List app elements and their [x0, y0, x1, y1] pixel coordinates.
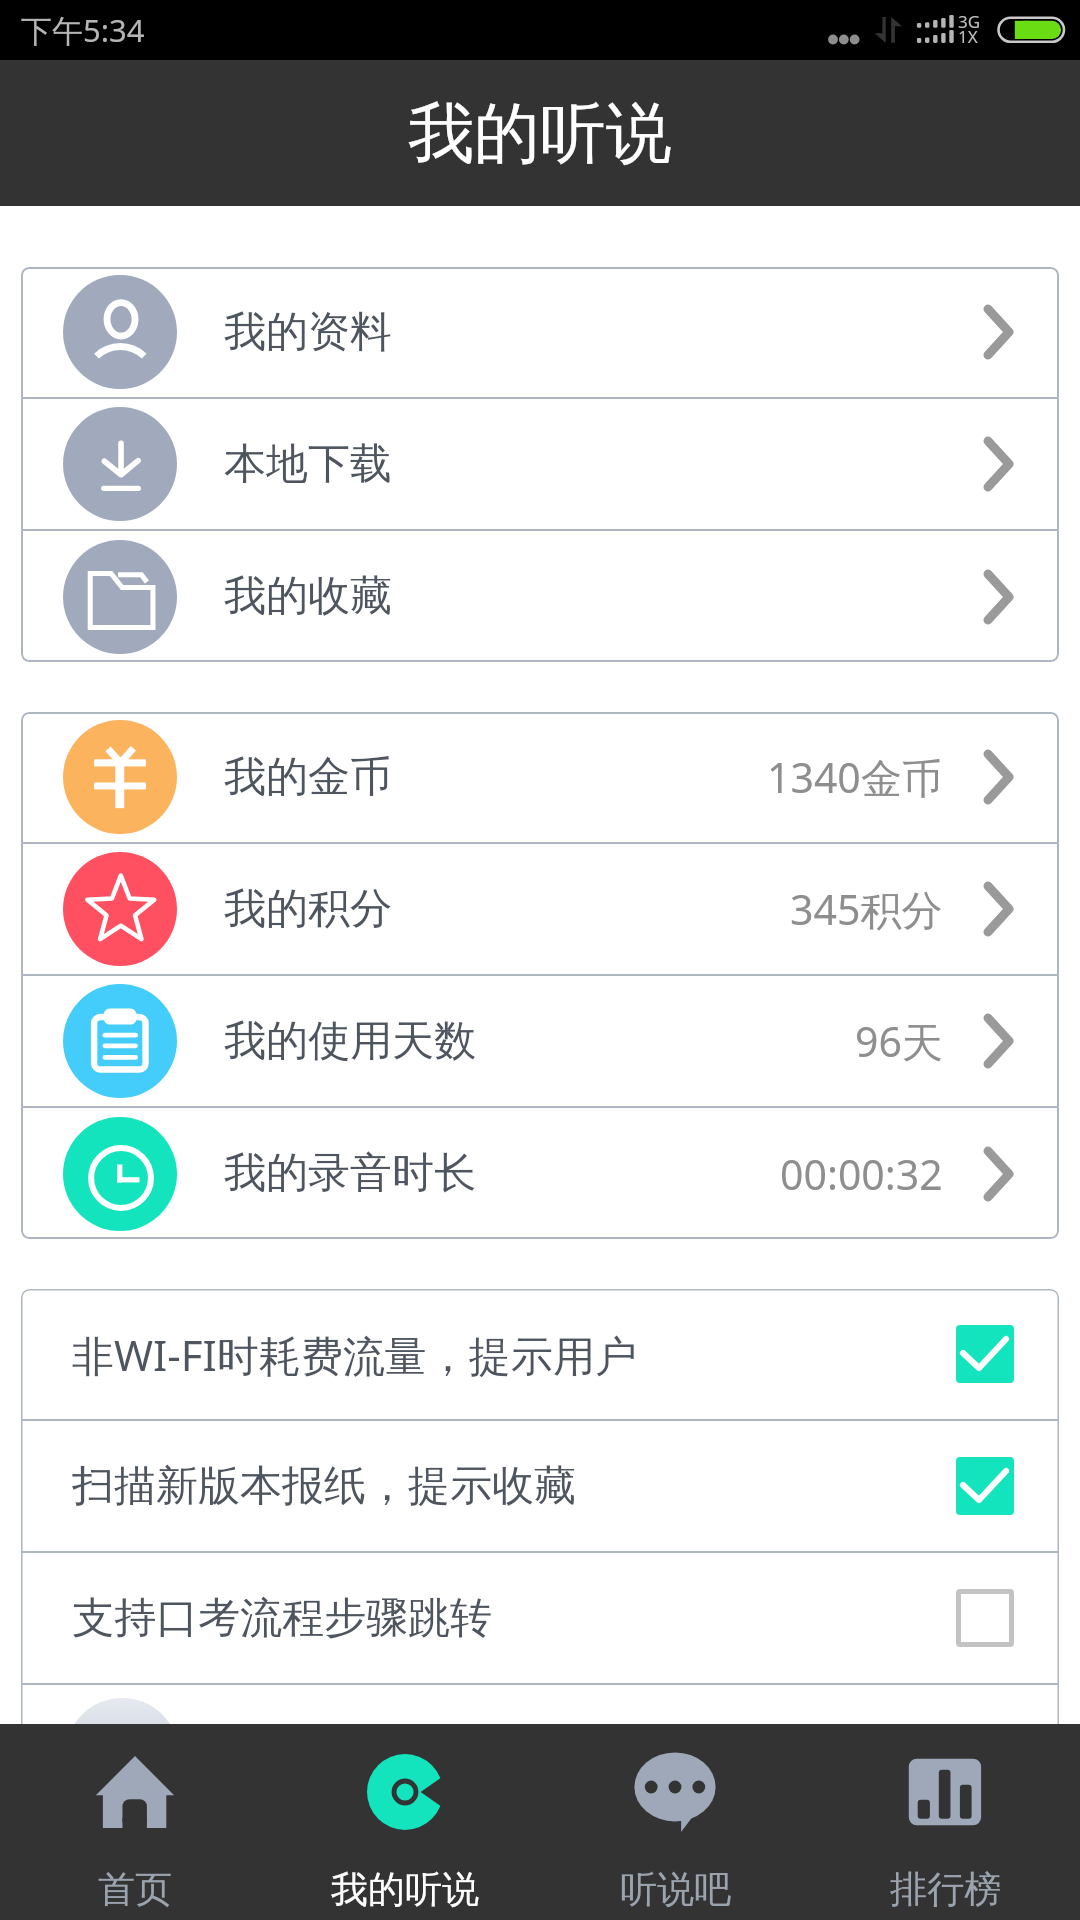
button[interactable]: 我的收藏 — [21, 531, 1059, 662]
button[interactable]: 非WI-FI时耗费流量，提示用户 — [21, 1289, 1059, 1421]
button[interactable]: 我的听说 — [270, 1724, 540, 1920]
staticText: 我的听说 — [408, 92, 672, 175]
button[interactable]: 我的使用天数 — [21, 976, 1059, 1108]
staticText: 我的听说 — [331, 1866, 479, 1913]
button[interactable]: 未选中：支持口考流程步骤跳转 — [956, 1589, 1014, 1647]
button[interactable]: 扫描新版本报纸，提示收藏 — [21, 1421, 1059, 1553]
button[interactable]: 我的金币 — [21, 712, 1059, 844]
staticText: 96天 — [855, 1013, 943, 1069]
button[interactable]: 听说吧 — [540, 1724, 810, 1920]
staticText: 非WI-FI时耗费流量，提示用户 — [72, 1326, 637, 1383]
staticText: 扫描新版本报纸，提示收藏 — [72, 1460, 576, 1513]
staticText: 下午5:34 — [21, 9, 145, 51]
staticText: 345积分 — [790, 881, 943, 937]
staticText: 3G — [958, 10, 981, 33]
staticText: 首页 — [98, 1866, 172, 1913]
staticText: 支持口考流程步骤跳转 — [72, 1592, 492, 1645]
staticText: 我的资料 — [224, 306, 392, 359]
button[interactable]: 我的积分 — [21, 844, 1059, 976]
button[interactable]: 我的录音时长 — [21, 1108, 1059, 1239]
button[interactable]: 本地下载 — [21, 399, 1059, 531]
staticText: 00:00:32 — [780, 1146, 943, 1202]
button[interactable]: 排行榜 — [810, 1724, 1080, 1920]
staticText: 我的使用天数 — [224, 1015, 476, 1068]
staticText: 听说吧 — [620, 1866, 731, 1913]
staticText: 我的收藏 — [224, 570, 392, 623]
staticText: 1340金币 — [767, 749, 943, 805]
staticText: 我的录音时长 — [224, 1147, 476, 1200]
button[interactable]: 已选中：扫描新版本报纸，提示收藏 — [956, 1457, 1014, 1515]
staticText: 我的金币 — [224, 751, 392, 804]
button[interactable]: 首页 — [0, 1724, 270, 1920]
button[interactable]: 我的资料 — [21, 267, 1059, 399]
staticText: 1X — [958, 25, 978, 48]
button[interactable]: 支持口考流程步骤跳转 — [21, 1553, 1059, 1685]
staticText: 本地下载 — [224, 438, 392, 491]
staticText: 排行榜 — [890, 1866, 1001, 1913]
staticText: 我的积分 — [224, 883, 392, 936]
button[interactable]: 已选中：非WI-FI时耗费流量，提示用户 — [956, 1325, 1014, 1383]
